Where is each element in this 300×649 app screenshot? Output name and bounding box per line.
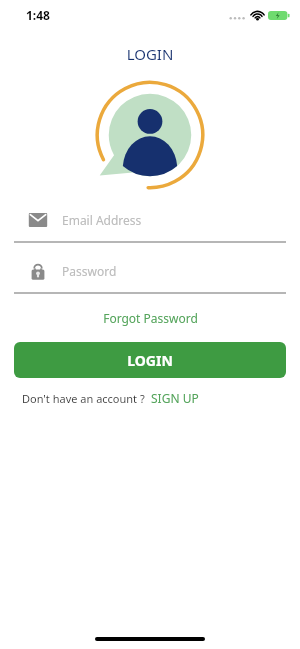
staticText: Password [62, 263, 117, 279]
staticText: SIGN UP [151, 390, 199, 406]
button[interactable]: LOGIN [14, 342, 286, 378]
other: Email [28, 210, 48, 230]
staticText: LOGIN [0, 44, 300, 64]
button[interactable]: Email [14, 206, 286, 234]
button[interactable]: SIGN UP [151, 390, 199, 406]
button[interactable]: Forgot Password [0, 306, 300, 330]
staticText: Forgot Password [103, 310, 198, 326]
other: Password [28, 261, 48, 281]
button[interactable]: Password [14, 257, 286, 285]
staticText: LOGIN [127, 351, 173, 370]
staticText: Email Address [62, 212, 142, 228]
staticText: 1:48 [26, 7, 50, 23]
staticText: Don't have an account ? [22, 391, 145, 406]
